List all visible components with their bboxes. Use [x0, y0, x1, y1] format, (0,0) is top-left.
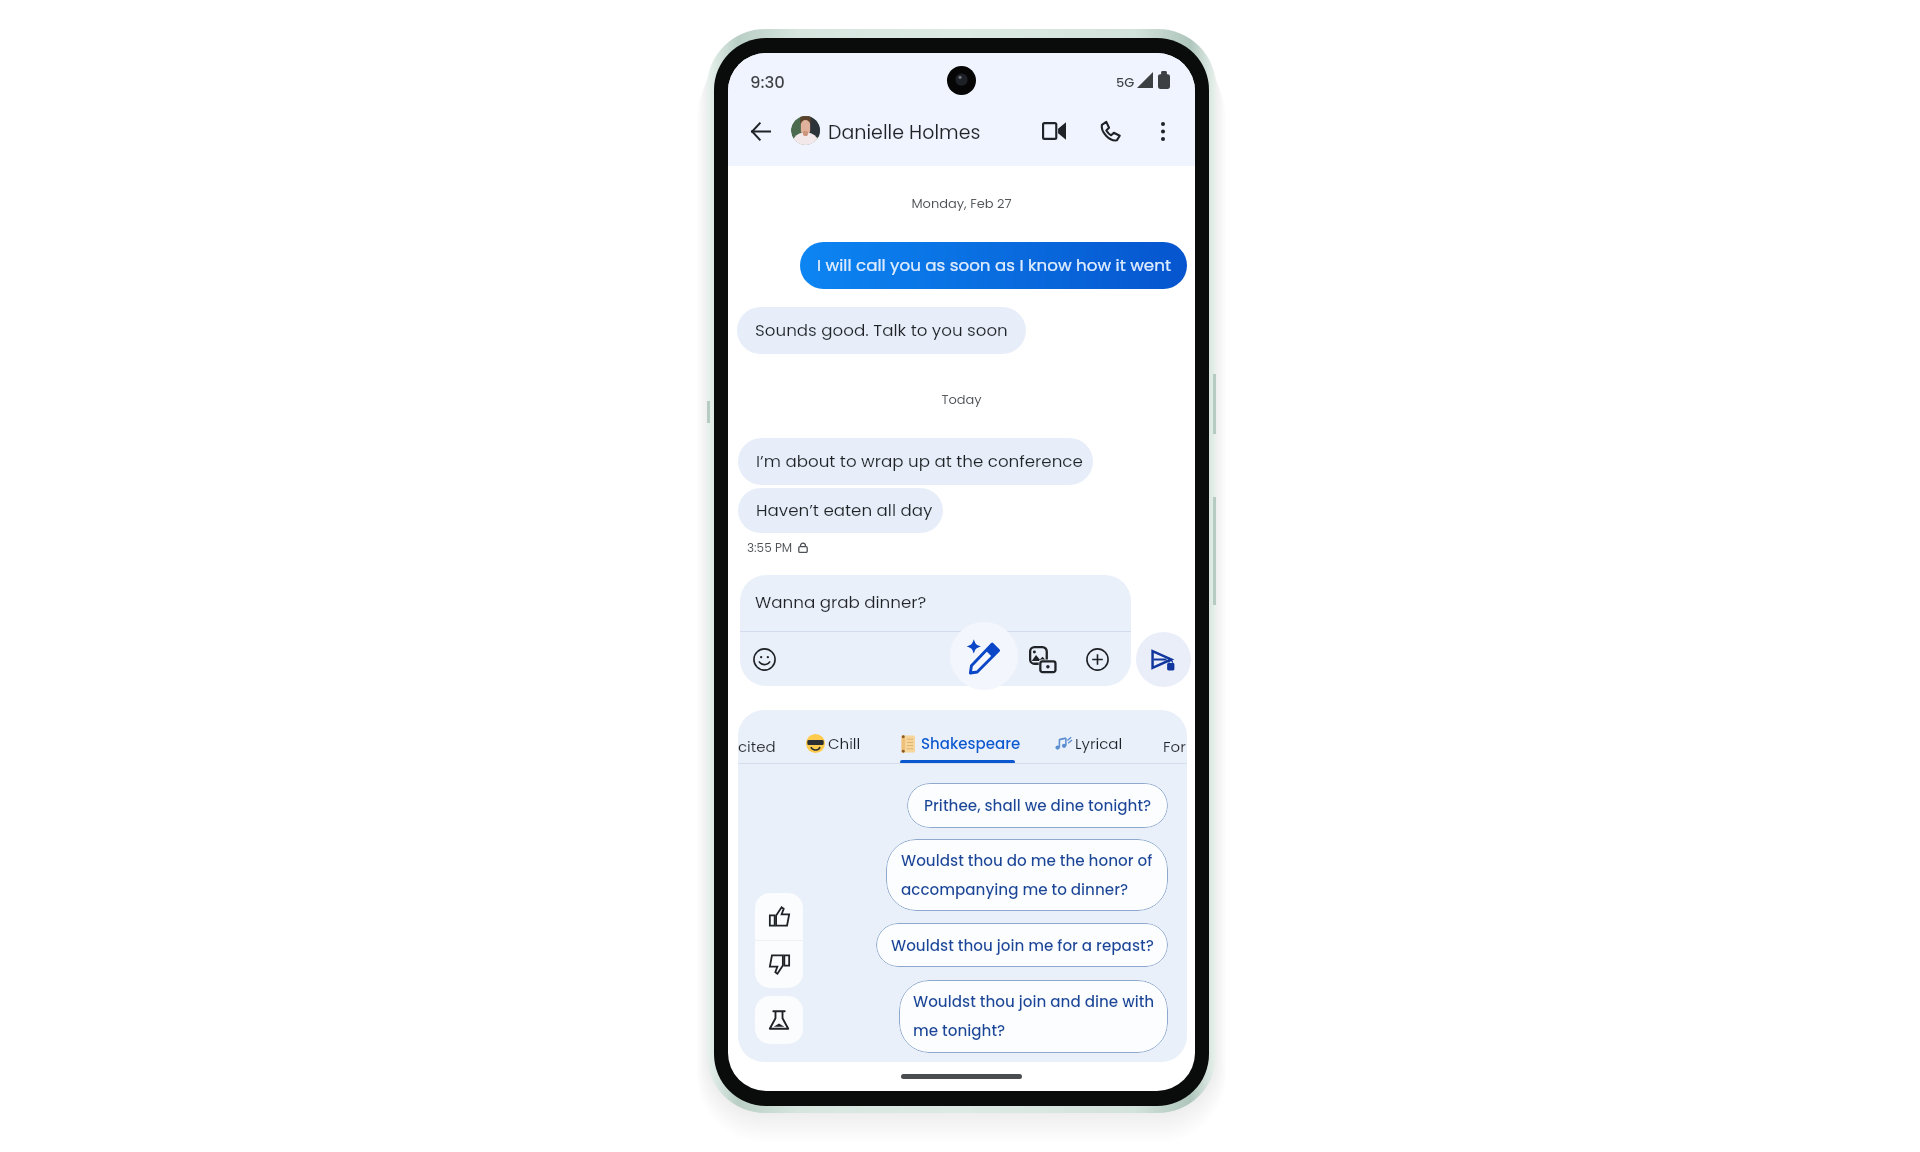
button[interactable]: Lyrical	[1054, 733, 1123, 754]
button[interactable]: Back	[740, 111, 780, 151]
staticText: Today	[728, 390, 1195, 408]
staticText: I’m about to wrap up at the conference	[756, 449, 1083, 472]
button[interactable]: Shakespeare	[899, 733, 1021, 754]
button[interactable]: Wouldst thou join and dine with me tonig…	[899, 980, 1168, 1053]
button[interactable]: Emoji	[747, 642, 782, 677]
staticText: Prithee, shall we dine tonight?	[924, 795, 1152, 816]
button[interactable]: Wouldst thou do me the honor of accompan…	[886, 839, 1168, 911]
button[interactable]: Labs	[755, 996, 803, 1044]
button[interactable]: Call	[1089, 110, 1131, 152]
button[interactable]: I’m about to wrap up at the conference	[738, 438, 1093, 485]
staticText: I will call you as soon as I know how it…	[817, 253, 1171, 276]
staticText: Wanna grab dinner?	[755, 590, 927, 613]
button[interactable]: Wouldst thou join me for a repast?	[876, 923, 1168, 967]
button[interactable]: Bad suggestion	[755, 941, 803, 988]
button[interactable]: Sounds good. Talk to you soon	[737, 307, 1026, 354]
button[interactable]: Video call	[1033, 110, 1075, 152]
staticText: 3:55 PM	[747, 539, 793, 556]
button[interactable]: Gallery	[1025, 642, 1060, 677]
button[interactable]: Prithee, shall we dine tonight?	[907, 783, 1168, 828]
button[interactable]: Magic compose	[950, 622, 1018, 690]
staticText: 9:30	[750, 71, 785, 94]
button[interactable]: cited	[738, 736, 776, 757]
staticText: 5G	[1116, 73, 1135, 91]
button[interactable]: Contact avatar	[791, 116, 820, 145]
staticText: Monday, Feb 27	[728, 194, 1195, 212]
staticText: Shakespeare	[921, 733, 1021, 754]
button[interactable]: Add attachment	[1080, 642, 1115, 677]
staticText: Wouldst thou join and dine with me tonig…	[913, 991, 1155, 1042]
button[interactable]: Danielle Holmes	[828, 119, 981, 146]
staticText: Sounds good. Talk to you soon	[755, 318, 1008, 341]
staticText: Wouldst thou join me for a repast?	[891, 935, 1154, 956]
button[interactable]: I will call you as soon as I know how it…	[800, 242, 1187, 289]
button[interactable]: More options	[1142, 110, 1184, 152]
staticText: Chill	[828, 733, 861, 754]
staticText: Wouldst thou do me the honor of accompan…	[901, 850, 1153, 901]
button[interactable]: Haven’t eaten all day	[738, 488, 943, 533]
button[interactable]: For	[1163, 736, 1186, 757]
staticText: Lyrical	[1075, 733, 1123, 754]
button[interactable]: Chill	[806, 733, 861, 754]
button[interactable]: Good suggestion	[755, 893, 803, 940]
staticText: Haven’t eaten all day	[756, 498, 933, 521]
button[interactable]: Send	[1136, 632, 1191, 687]
